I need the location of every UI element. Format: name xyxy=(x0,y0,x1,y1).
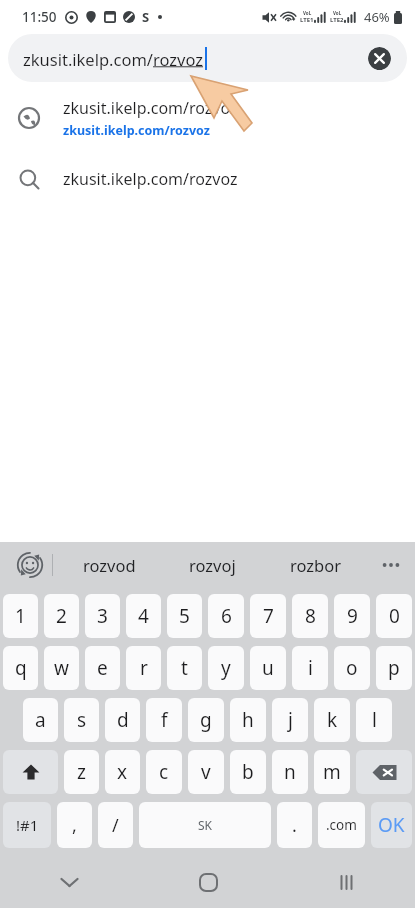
staticText: / xyxy=(112,813,119,838)
staticText: rozvod xyxy=(83,554,136,576)
staticText: j xyxy=(288,707,293,733)
button[interactable]: g xyxy=(188,698,224,742)
staticText: rozvoz xyxy=(153,48,204,70)
button[interactable]: , xyxy=(57,802,92,848)
staticText: q xyxy=(15,655,27,681)
staticText: o xyxy=(346,655,358,681)
staticText: b xyxy=(242,759,254,785)
staticText: 9 xyxy=(347,603,358,629)
staticText: 46% xyxy=(364,8,390,26)
button[interactable]: l xyxy=(356,698,392,742)
button[interactable]: 4 xyxy=(126,594,161,638)
staticText: rozbor xyxy=(290,554,342,576)
staticText: a xyxy=(35,707,46,733)
button[interactable]: zkusit.ikelp.com/ xyxy=(8,34,407,82)
staticText: l xyxy=(372,707,377,733)
button[interactable]: x xyxy=(105,750,140,794)
button[interactable]: / xyxy=(98,802,133,848)
button[interactable]: Home xyxy=(139,856,277,908)
staticText: SK xyxy=(198,817,213,833)
button[interactable]: m xyxy=(314,750,350,794)
staticText: 7 xyxy=(263,603,274,629)
button[interactable]: s xyxy=(64,698,99,742)
button[interactable]: q xyxy=(3,646,38,690)
button[interactable]: 8 xyxy=(292,594,328,638)
staticText: 3 xyxy=(97,603,108,629)
button[interactable]: OK xyxy=(371,802,412,848)
button[interactable]: 7 xyxy=(250,594,286,638)
button[interactable]: y xyxy=(208,646,244,690)
button[interactable]: 3 xyxy=(85,594,120,638)
button[interactable]: c xyxy=(146,750,182,794)
staticText: 4 xyxy=(138,603,149,629)
staticText: s xyxy=(77,707,87,733)
staticText: g xyxy=(200,707,212,733)
button[interactable]: Clear text xyxy=(368,47,391,70)
button[interactable]: h xyxy=(230,698,266,742)
button[interactable]: k xyxy=(314,698,350,742)
button[interactable]: 6 xyxy=(208,594,244,638)
staticText: n xyxy=(284,759,296,785)
button[interactable]: t xyxy=(167,646,202,690)
button[interactable]: a xyxy=(23,698,58,742)
staticText: 1 xyxy=(15,603,26,629)
button[interactable]: . xyxy=(277,802,312,848)
staticText: 2 xyxy=(56,603,67,629)
button[interactable]: .com xyxy=(318,802,365,848)
button[interactable]: rozbor xyxy=(264,542,367,588)
staticText: .com xyxy=(326,816,357,834)
staticText: k xyxy=(327,707,338,733)
button[interactable]: zkusit.ikelp.com/rozvoz xyxy=(0,86,415,150)
staticText: p xyxy=(388,655,400,681)
staticText: VoL xyxy=(303,10,312,16)
staticText: . xyxy=(292,813,297,838)
button[interactable]: b xyxy=(230,750,266,794)
button[interactable]: r xyxy=(126,646,161,690)
button[interactable]: Hide keyboard xyxy=(0,856,139,908)
staticText: !#1 xyxy=(16,815,39,835)
staticText: OK xyxy=(378,812,405,838)
button[interactable]: SK xyxy=(139,802,271,848)
staticText: 8 xyxy=(305,603,316,629)
staticText: S xyxy=(142,8,150,26)
button[interactable]: 9 xyxy=(334,594,370,638)
staticText: i xyxy=(308,655,313,681)
button[interactable]: zkusit.ikelp.com/rozvoz xyxy=(0,150,415,208)
button[interactable]: Shift xyxy=(3,750,58,794)
button[interactable]: w xyxy=(44,646,79,690)
button[interactable]: rozvod xyxy=(58,542,161,588)
button[interactable]: 0 xyxy=(376,594,412,638)
button[interactable]: i xyxy=(292,646,328,690)
button[interactable]: More suggestions xyxy=(367,542,415,588)
button[interactable]: n xyxy=(272,750,308,794)
button[interactable]: j xyxy=(272,698,308,742)
button[interactable]: z xyxy=(64,750,99,794)
button[interactable]: u xyxy=(250,646,286,690)
button[interactable]: 1 xyxy=(3,594,38,638)
button[interactable]: d xyxy=(105,698,140,742)
staticText: LTE1 xyxy=(300,16,314,24)
staticText: 5 xyxy=(179,603,190,629)
staticText: 11:50 xyxy=(22,8,57,26)
button[interactable]: p xyxy=(376,646,412,690)
button[interactable]: Backspace xyxy=(356,750,412,794)
staticText: zkusit.ikelp.com/rozvoz xyxy=(63,168,238,190)
button[interactable]: rozvoj xyxy=(161,542,264,588)
button[interactable]: e xyxy=(85,646,120,690)
button[interactable]: Recent apps xyxy=(277,856,415,908)
staticText: m xyxy=(323,759,341,785)
staticText: r xyxy=(140,655,148,681)
staticText: f xyxy=(161,707,168,733)
button[interactable]: 5 xyxy=(167,594,202,638)
staticText: x xyxy=(117,759,128,785)
button[interactable]: 2 xyxy=(44,594,79,638)
staticText: w xyxy=(54,655,69,681)
button[interactable]: o xyxy=(334,646,370,690)
button[interactable]: v xyxy=(188,750,224,794)
staticText: t xyxy=(181,655,188,681)
button[interactable]: !#1 xyxy=(3,802,51,848)
staticText: z xyxy=(77,759,86,785)
button[interactable]: f xyxy=(146,698,182,742)
staticText: 0 xyxy=(389,603,400,629)
staticText: zkusit.ikelp.com/rozvoz xyxy=(63,97,238,119)
